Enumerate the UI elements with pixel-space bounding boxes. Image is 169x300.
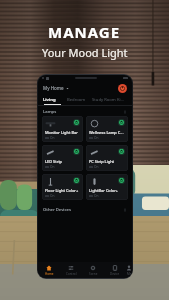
staticText: On — [94, 165, 99, 168]
button[interactable]: Study Room — [92, 95, 117, 104]
button[interactable]: Toggle power — [42, 116, 83, 142]
button[interactable]: Toggle power — [86, 116, 128, 142]
staticText: Control — [66, 272, 77, 276]
button[interactable]: Living Room — [43, 95, 67, 104]
staticText: PC Strip Light — [89, 159, 115, 164]
button[interactable]: Toggle power — [73, 119, 80, 126]
staticText: On — [50, 165, 55, 168]
staticText: Lamps — [43, 109, 57, 115]
button[interactable]: Toggle power — [86, 174, 128, 200]
button[interactable]: Toggle power — [42, 174, 83, 200]
button[interactable]: Toggle power — [42, 145, 83, 171]
button[interactable]: Scene — [82, 262, 104, 278]
staticText: Bedroom — [67, 97, 86, 103]
staticText: Scene — [89, 272, 98, 276]
button[interactable]: Control — [60, 262, 82, 278]
staticText: LED Strip — [45, 159, 62, 164]
staticText: Other Devices — [43, 207, 71, 213]
staticText: Living Room — [43, 97, 67, 103]
button[interactable]: Bedroom — [67, 95, 92, 104]
staticText: Monitor Light Bar — [45, 130, 78, 135]
button[interactable]: Toggle power — [118, 177, 125, 184]
staticText: Study Room — [92, 97, 116, 103]
button[interactable]: Toggle power — [73, 177, 80, 184]
staticText: On — [50, 194, 55, 197]
staticText: On — [94, 194, 99, 197]
staticText: Your Mood Light — [42, 45, 128, 60]
button[interactable]: More options — [123, 110, 127, 114]
button[interactable]: Toggle power — [118, 148, 125, 155]
button[interactable]: Toggle power — [118, 119, 125, 126]
button[interactable]: Add device — [118, 84, 127, 93]
button[interactable]: Ki... — [117, 95, 127, 104]
button[interactable]: Device — [104, 262, 126, 278]
staticText: Wellness Lamp C... — [89, 130, 124, 135]
staticText: Home — [45, 272, 54, 276]
button[interactable]: Toggle power — [73, 148, 80, 155]
button[interactable]: Toggle power — [86, 145, 128, 171]
button[interactable]: Me — [126, 262, 132, 278]
staticText: My Home — [43, 85, 64, 91]
button[interactable]: Home — [38, 262, 60, 278]
staticText: LightBar Color+ — [89, 188, 119, 193]
staticText: Device — [110, 272, 120, 276]
staticText: Ki... — [117, 97, 125, 103]
staticText: On — [50, 136, 55, 139]
button[interactable]: My Home — [43, 85, 69, 91]
staticText: Me — [127, 272, 132, 276]
staticText: On — [94, 136, 99, 139]
staticText: Floor Light Color+ — [45, 188, 79, 193]
staticText: MANAGE — [48, 22, 121, 42]
button[interactable]: More options — [123, 208, 127, 212]
